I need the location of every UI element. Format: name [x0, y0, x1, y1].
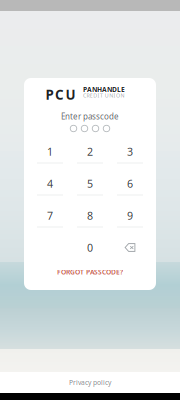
button[interactable]: Delete — [110, 232, 150, 263]
staticText: 0 — [87, 240, 93, 255]
staticText: 2 — [87, 144, 93, 159]
button[interactable]: 3 — [110, 136, 150, 167]
button[interactable]: FORGOT PASSCODE? — [35, 260, 145, 284]
staticText: 8 — [87, 208, 93, 223]
button[interactable]: 2 — [70, 136, 110, 167]
button[interactable]: 0 — [70, 232, 110, 263]
staticText: PANHANDLE — [83, 85, 125, 94]
staticText: 6 — [127, 176, 133, 191]
staticText: 1 — [47, 144, 53, 159]
button[interactable]: Privacy policy — [0, 372, 180, 393]
button[interactable]: 4 — [30, 168, 70, 199]
staticText: Privacy policy — [69, 378, 111, 387]
staticText: 3 — [127, 144, 133, 159]
button[interactable]: 6 — [110, 168, 150, 199]
button[interactable]: 7 — [30, 200, 70, 231]
button[interactable]: 5 — [70, 168, 110, 199]
staticText: 4 — [47, 176, 53, 191]
staticText: CREDIT UNION — [83, 92, 124, 99]
staticText: 7 — [47, 208, 53, 223]
staticText: 9 — [127, 208, 133, 223]
staticText: Enter passcode — [61, 111, 119, 122]
staticText: PCU — [45, 86, 75, 103]
staticText: 5 — [87, 176, 93, 191]
button[interactable]: 8 — [70, 200, 110, 231]
button[interactable]: 9 — [110, 200, 150, 231]
staticText: FORGOT PASSCODE? — [57, 268, 123, 276]
button[interactable]: 1 — [30, 136, 70, 167]
